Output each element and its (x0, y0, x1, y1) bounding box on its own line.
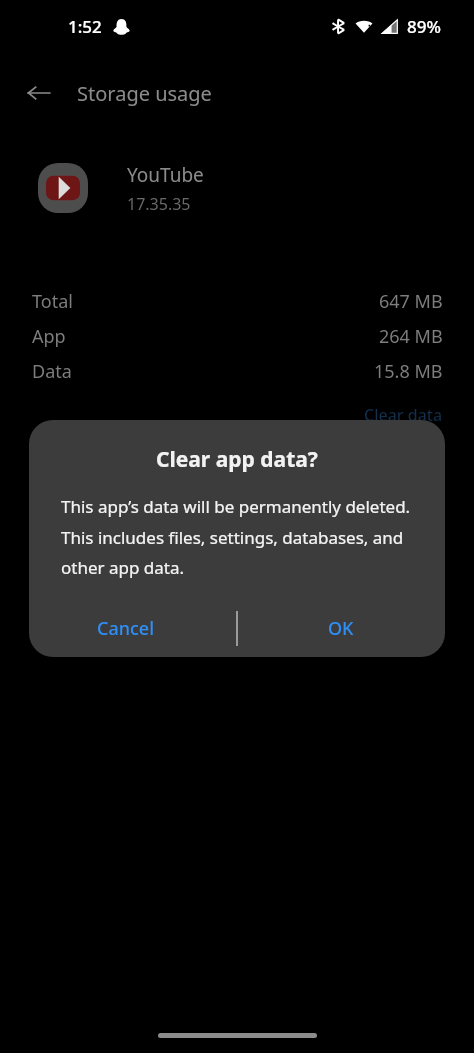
staticText: Total (32, 289, 73, 314)
button[interactable]: Data (0, 354, 474, 389)
staticText: 17.35.35 (127, 193, 191, 215)
staticText: 89% (407, 15, 441, 38)
button[interactable]: Cancel (83, 608, 169, 649)
staticText: Storage usage (77, 80, 212, 107)
button[interactable]: App (0, 319, 474, 354)
staticText: 647 MB (379, 289, 443, 314)
staticText: OK (328, 616, 354, 641)
button[interactable]: Total (0, 284, 474, 319)
button[interactable]: Back (21, 75, 57, 111)
staticText: YouTube (127, 162, 204, 188)
staticText: Clear data (364, 404, 443, 426)
staticText: 15.8 MB (374, 359, 443, 384)
staticText: 264 MB (379, 324, 443, 349)
button[interactable]: YouTube (0, 152, 474, 224)
button[interactable]: OK (314, 608, 368, 649)
staticText: App (32, 324, 66, 349)
staticText: This app’s data will be permanently dele… (61, 495, 423, 579)
staticText: Clear app data? (156, 445, 318, 474)
button[interactable]: Clear data (0, 402, 474, 428)
staticText: Data (32, 359, 72, 384)
staticText: 1:52 (68, 15, 102, 38)
staticText: Cancel (97, 616, 155, 641)
